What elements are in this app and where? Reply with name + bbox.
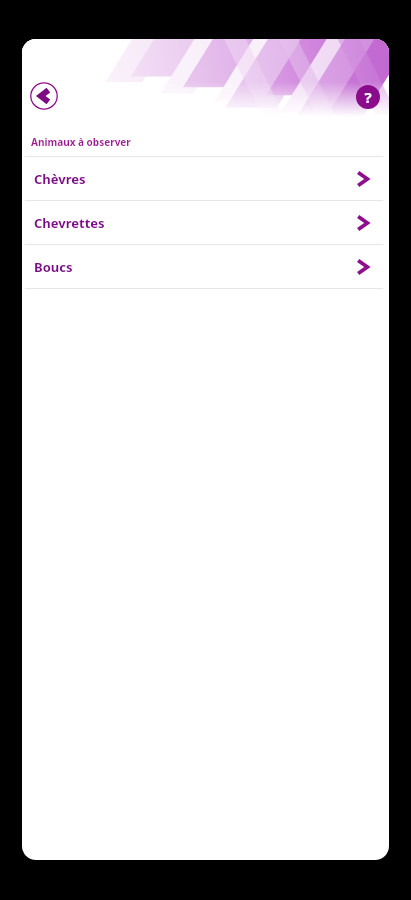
button[interactable]: Back <box>27 79 61 113</box>
staticText: Chevrettes <box>34 214 105 232</box>
button[interactable]: Help <box>353 82 383 112</box>
staticText: Chèvres <box>34 170 86 188</box>
staticText: Animaux à observer <box>31 135 131 149</box>
button[interactable]: Chèvres <box>25 157 383 200</box>
button[interactable]: Chevrettes <box>25 201 383 244</box>
staticText: Boucs <box>34 258 73 276</box>
staticText: ? <box>364 87 372 107</box>
button[interactable]: Boucs <box>25 245 383 288</box>
